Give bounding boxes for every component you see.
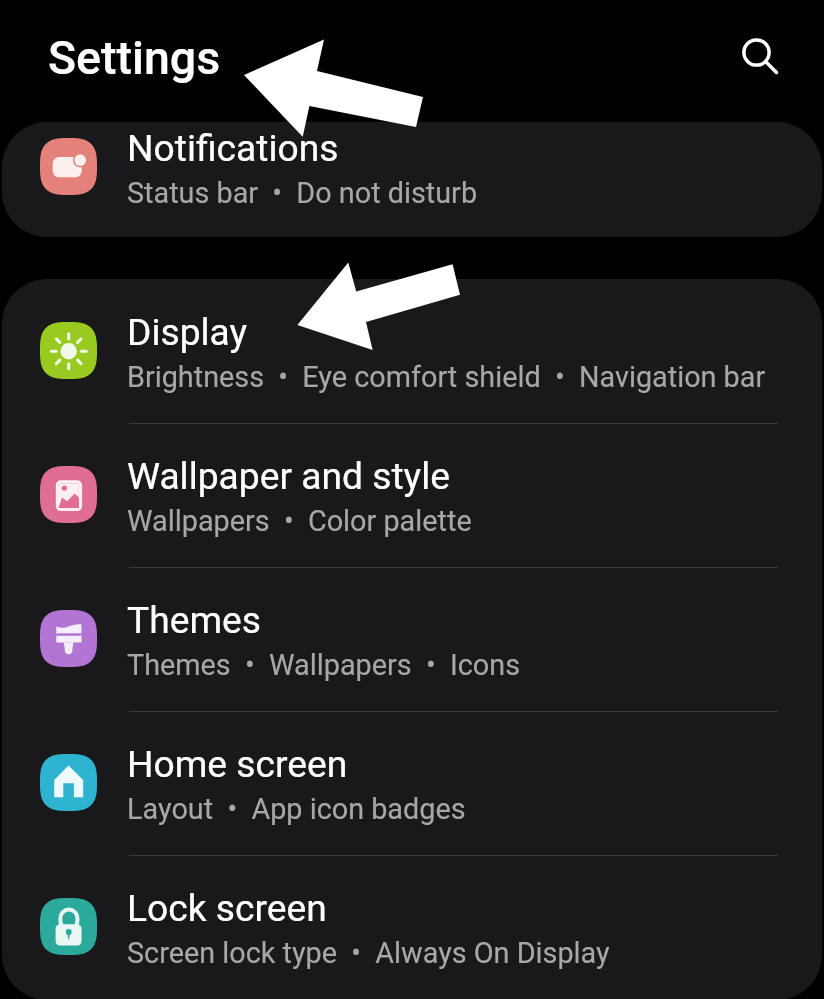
staticText: Brightness • Eye comfort shield • Naviga… [127, 360, 766, 394]
staticText: Screen lock type • Always On Display [127, 936, 610, 970]
staticText: Status bar • Do not disturb [127, 176, 478, 210]
staticText: Layout • App icon badges [127, 792, 466, 826]
staticText: Home screen [127, 742, 348, 786]
staticText: Wallpapers • Color palette [127, 504, 472, 538]
staticText: Notifications [127, 126, 339, 170]
button[interactable]: Themes [2, 567, 822, 711]
button[interactable]: Search [720, 17, 792, 89]
button[interactable]: Display [2, 279, 822, 423]
staticText: Display [127, 310, 248, 354]
button[interactable]: Notifications [2, 122, 822, 237]
staticText: Themes • Wallpapers • Icons [127, 648, 521, 682]
staticText: Lock screen [127, 886, 327, 930]
staticText: Settings [48, 31, 221, 85]
button[interactable]: Home screen [2, 711, 822, 855]
button[interactable]: Lock screen [2, 855, 822, 999]
staticText: Wallpaper and style [127, 454, 450, 498]
button[interactable]: Wallpaper and style [2, 423, 822, 567]
staticText: Themes [127, 598, 261, 642]
